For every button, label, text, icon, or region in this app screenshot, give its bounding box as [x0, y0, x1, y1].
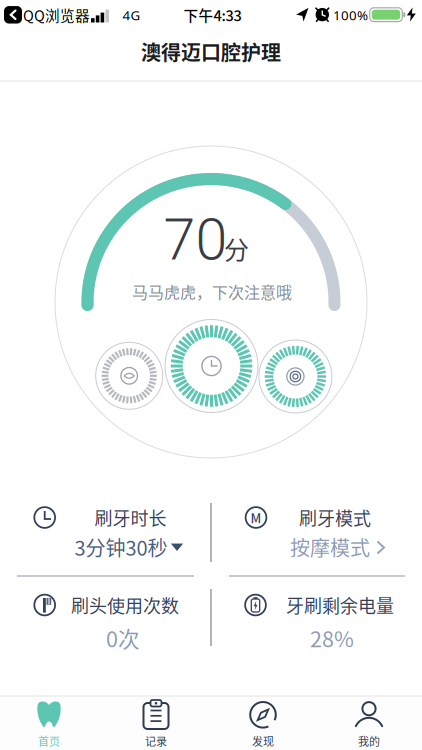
staticText: 我的 — [358, 733, 380, 749]
button[interactable]: 发现 — [213, 695, 313, 749]
button[interactable]: 返回QQ浏览器 — [0, 0, 90, 30]
staticText: QQ浏览器 — [23, 4, 90, 25]
button[interactable]: 首页 — [0, 695, 99, 749]
staticText: 28% — [310, 622, 354, 653]
button[interactable]: 刷牙时长 — [0, 498, 211, 576]
staticText: 刷头使用次数 — [71, 592, 179, 618]
staticText: 首页 — [38, 733, 60, 749]
staticText: 100% — [333, 6, 368, 24]
staticText: 澳得迈口腔护理 — [141, 37, 281, 66]
button[interactable]: 记录 — [106, 695, 206, 749]
staticText: 按摩模式 — [290, 532, 370, 561]
staticText: 刷牙模式 — [299, 504, 371, 531]
staticText: 4G — [122, 6, 140, 24]
staticText: 分 — [224, 230, 249, 267]
staticText: 牙刷剩余电量 — [286, 592, 394, 618]
staticText: 刷牙时长 — [94, 504, 166, 531]
staticText: 马马虎虎，下次注意哦 — [132, 280, 292, 303]
staticText: M — [250, 508, 261, 527]
staticText: 0次 — [106, 622, 140, 653]
staticText: 3分钟30秒 — [74, 532, 167, 561]
staticText: 下午4:33 — [184, 4, 242, 25]
button[interactable]: 我的 — [319, 695, 419, 749]
staticText: 70 — [163, 206, 227, 274]
staticText: 记录 — [145, 733, 167, 749]
button[interactable]: M — [211, 498, 422, 576]
staticText: 发现 — [252, 733, 274, 749]
